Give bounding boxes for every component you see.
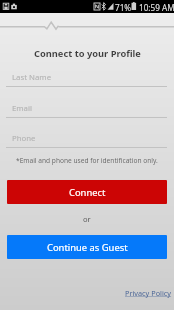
staticText: Connect to your Profile bbox=[34, 47, 141, 60]
staticText: or bbox=[83, 214, 91, 224]
staticText: Connect bbox=[69, 186, 106, 199]
button[interactable]: Continue as Guest bbox=[7, 235, 167, 259]
staticText: Last Name bbox=[12, 72, 52, 83]
button[interactable]: Last Name bbox=[0, 69, 174, 86]
staticText: Privacy Policy bbox=[125, 288, 172, 298]
staticText: *Email and phone used for identification… bbox=[16, 156, 158, 165]
button[interactable]: Privacy Policy bbox=[123, 286, 174, 300]
button[interactable]: Phone bbox=[0, 130, 174, 147]
staticText: 71% bbox=[115, 2, 132, 13]
button[interactable]: Email bbox=[0, 100, 174, 117]
button[interactable]: Connect bbox=[7, 180, 167, 204]
staticText: Phone bbox=[12, 133, 36, 144]
staticText: Continue as Guest bbox=[47, 241, 128, 254]
staticText: 10:59 AM bbox=[139, 2, 174, 13]
staticText: Email bbox=[12, 103, 33, 114]
